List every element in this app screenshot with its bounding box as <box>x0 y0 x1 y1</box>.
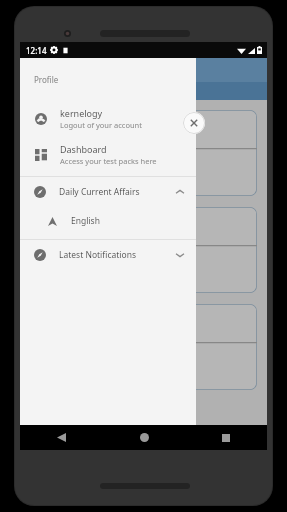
staticText: Latest Notifications <box>59 249 176 261</box>
button[interactable]: Back <box>20 425 103 450</box>
button[interactable]: Close drawer <box>183 112 205 134</box>
staticText: kernelogy <box>60 107 103 119</box>
button[interactable]: Dashboard <box>34 136 196 172</box>
staticText: 12:14 <box>26 45 47 56</box>
staticText: Dashboard <box>60 143 107 155</box>
button[interactable]: Latest Notifications <box>34 240 184 270</box>
button[interactable] <box>30 207 257 293</box>
button[interactable] <box>30 304 257 390</box>
staticText: Profile <box>34 74 59 85</box>
staticText: Access your test packs here <box>60 156 157 166</box>
button[interactable]: kernelogy <box>34 100 196 136</box>
staticText: Logout of your account <box>60 120 142 130</box>
button[interactable]: English <box>20 207 196 235</box>
staticText: English <box>71 215 100 227</box>
staticText: Daily Current Affairs <box>59 186 176 198</box>
button[interactable]: Recent apps <box>185 425 267 450</box>
button[interactable]: Daily Current Affairs <box>34 177 184 207</box>
button[interactable] <box>30 110 257 196</box>
button[interactable]: Home <box>103 425 185 450</box>
